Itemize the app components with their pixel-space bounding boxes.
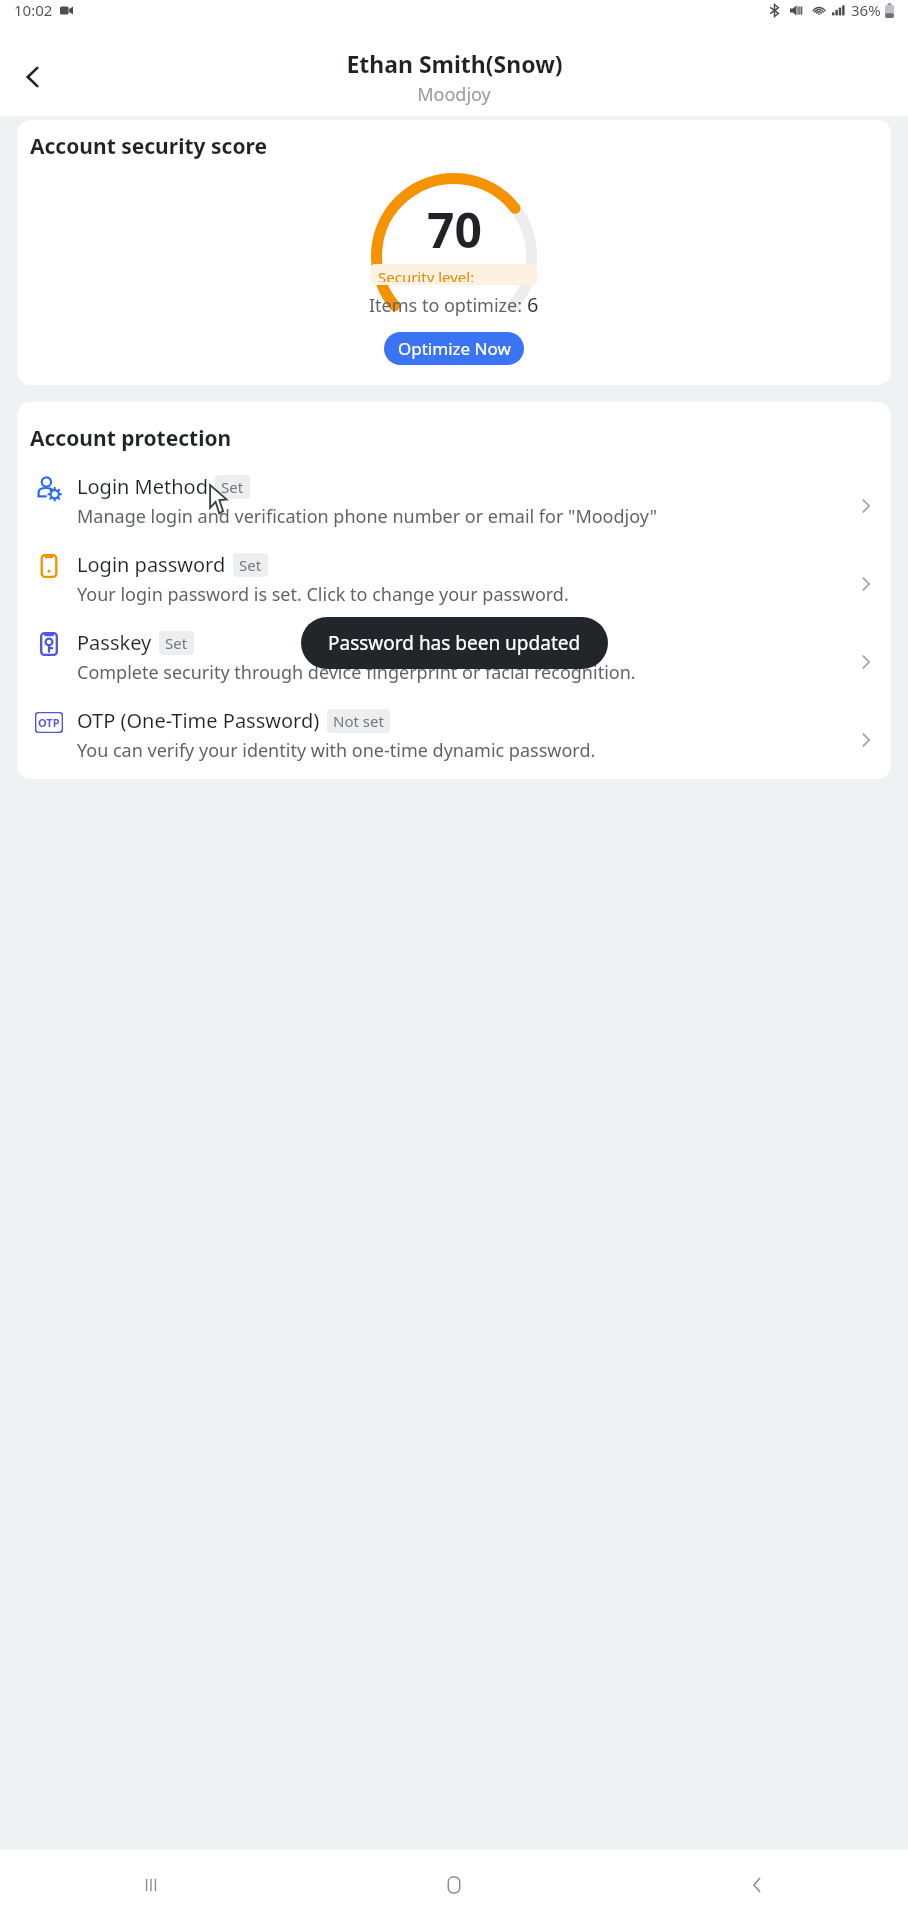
staticText: Password has been updated [328,630,581,656]
staticText: Login Method [77,473,208,500]
button[interactable]: OTP [17,705,891,765]
staticText: Set [221,477,244,497]
button[interactable]: Home [424,1855,484,1915]
staticText: 70 [427,197,482,262]
staticText: OTP (One-Time Password) [77,707,320,734]
staticText: Not set [333,711,384,731]
button[interactable]: Login password [17,549,891,609]
button[interactable]: Optimize Now [384,332,524,365]
staticText: Moodjoy [417,82,491,107]
staticText: Set [239,555,262,575]
staticText: Security level: Medium [378,267,530,282]
staticText: OTP [38,715,60,730]
staticText: Set [165,633,188,653]
staticText: Manage login and verification phone numb… [77,504,657,529]
staticText: Login password [77,551,226,578]
button[interactable]: Recent apps [121,1855,181,1915]
staticText: Complete security through device fingerp… [77,660,636,685]
staticText: 10:02 [14,0,53,20]
staticText: Your login password is set. Click to cha… [77,582,569,607]
button[interactable]: Login Method [17,471,891,531]
button[interactable]: Back [6,50,60,104]
button[interactable]: Back [727,1855,787,1915]
staticText: Optimize Now [398,337,511,360]
staticText: Account security score [30,132,268,161]
staticText: Items to optimize: [369,293,527,318]
staticText: 6 [527,291,539,318]
staticText: 36% [851,0,881,20]
staticText: Passkey [77,629,152,656]
staticText: You can verify your identity with one-ti… [77,738,596,763]
staticText: Ethan Smith(Snow) [346,48,563,79]
button[interactable]: Passkey [17,627,891,687]
staticText: Account protection [30,424,232,453]
